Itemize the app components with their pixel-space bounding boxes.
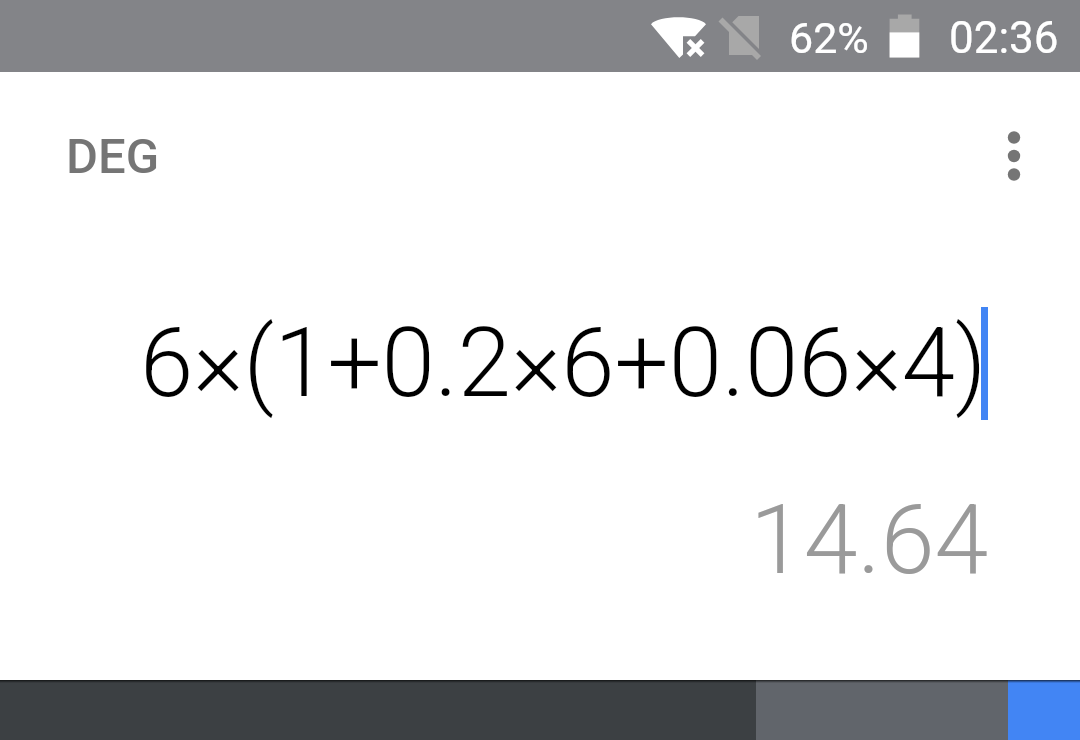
button[interactable]: Number pad [0, 680, 756, 740]
staticText: 6×(1+0.2×6+0.06×4) [140, 307, 987, 420]
staticText: DEG [66, 128, 160, 185]
button[interactable]: Operator pad [756, 680, 1008, 740]
button[interactable]: DEG [42, 104, 184, 209]
button[interactable]: More options [966, 108, 1062, 204]
staticText: 14.64 [750, 483, 989, 597]
staticText: 02:36 [949, 12, 1059, 64]
button[interactable]: Equals [1008, 680, 1080, 740]
staticText: 62% [789, 13, 869, 63]
